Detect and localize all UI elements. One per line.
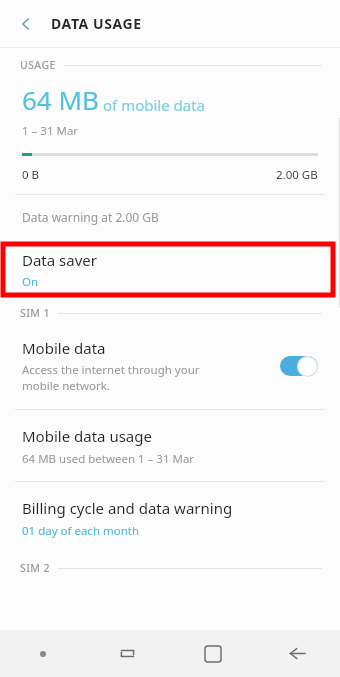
staticText: On: [22, 274, 39, 290]
button[interactable]: Home: [170, 630, 255, 677]
button[interactable]: Back: [9, 7, 43, 41]
staticText: USAGE: [20, 58, 56, 72]
button[interactable]: Billing cycle and data warning: [0, 482, 340, 553]
staticText: Data warning at 2.00 GB: [22, 209, 159, 225]
button[interactable]: Mobile data usage: [0, 410, 340, 481]
staticText: Mobile data usage: [22, 426, 152, 446]
button[interactable]: Mobile data toggle: [280, 354, 322, 378]
staticText: 2.00 GB: [276, 167, 318, 183]
staticText: 1 – 31 Mar: [22, 123, 79, 139]
staticText: 0 B: [22, 167, 40, 183]
staticText: SIM 1: [20, 306, 50, 320]
button[interactable]: Data saver: [0, 242, 340, 297]
staticText: 64 MB: [22, 82, 99, 117]
button[interactable]: Recents: [85, 630, 170, 677]
staticText: SIM 2: [20, 561, 50, 575]
staticText: Billing cycle and data warning: [22, 498, 233, 518]
staticText: Data saver: [22, 250, 97, 270]
staticText: of mobile data: [103, 95, 206, 115]
button[interactable]: Mobile data: [0, 334, 340, 403]
staticText: Mobile data: [22, 338, 106, 358]
staticText: 01 day of each month: [22, 523, 140, 539]
staticText: Access the internet through your mobile …: [22, 362, 200, 393]
button[interactable]: Back: [255, 630, 340, 677]
staticText: 64 MB used between 1 – 31 Mar: [22, 451, 195, 467]
staticText: DATA USAGE: [51, 14, 142, 33]
